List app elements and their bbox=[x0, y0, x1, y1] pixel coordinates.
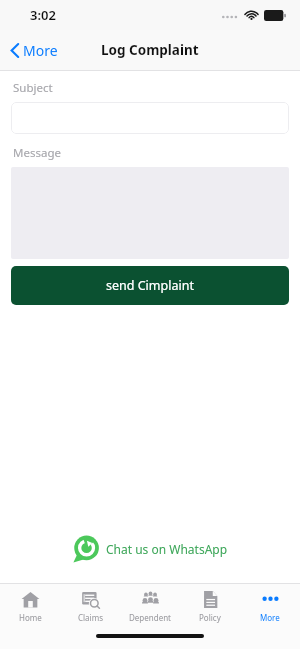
button[interactable]: Chat us on WhatsApp bbox=[72, 535, 228, 563]
staticText: More bbox=[23, 41, 58, 60]
button[interactable]: send Cimplaint bbox=[11, 266, 289, 305]
button[interactable]: Home bbox=[0, 584, 60, 628]
staticText: Claims bbox=[78, 612, 103, 623]
staticText: Log Complaint bbox=[101, 41, 199, 59]
button[interactable]: Claims bbox=[60, 584, 120, 628]
button[interactable]: More bbox=[8, 37, 60, 64]
staticText: More bbox=[260, 612, 280, 623]
staticText: send Cimplaint bbox=[106, 277, 194, 294]
staticText: Home bbox=[19, 612, 42, 623]
staticText: Dependent bbox=[129, 612, 171, 623]
button[interactable] bbox=[11, 102, 289, 134]
button[interactable]: Policy bbox=[180, 584, 240, 628]
staticText: Message bbox=[13, 145, 61, 161]
button[interactable]: Dependent bbox=[120, 584, 180, 628]
staticText: Subject bbox=[13, 80, 53, 96]
staticText: Chat us on WhatsApp bbox=[106, 541, 228, 557]
staticText: 3:02 bbox=[30, 6, 56, 24]
staticText: Policy bbox=[199, 612, 221, 623]
button[interactable]: More bbox=[240, 584, 300, 628]
